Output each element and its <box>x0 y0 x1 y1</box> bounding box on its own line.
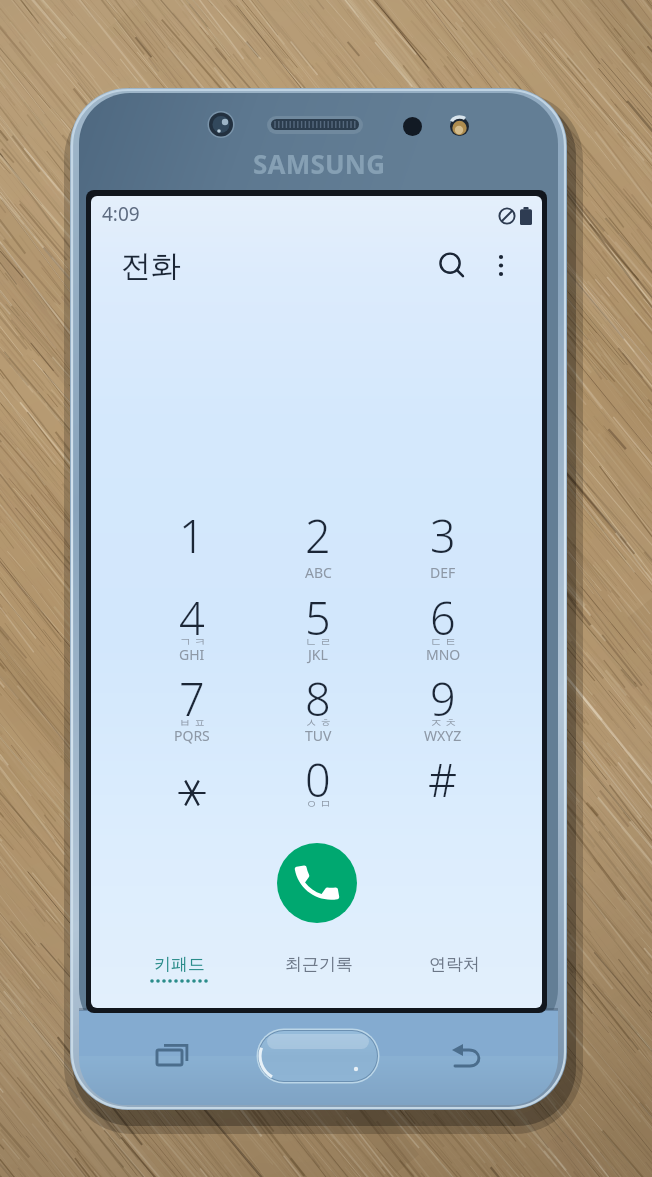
button[interactable]: Call <box>277 843 357 923</box>
staticText: GHI <box>179 645 205 664</box>
staticText: 연락처 <box>429 954 480 975</box>
staticText: PQRS <box>174 726 210 745</box>
button[interactable]: 4 <box>130 580 254 660</box>
staticText: ㄷㅌ <box>429 634 458 649</box>
staticText: JKL <box>308 645 328 664</box>
button[interactable]: 1 <box>130 498 254 578</box>
button[interactable]: 6 <box>381 580 505 660</box>
button[interactable]: 전화 <box>121 244 181 288</box>
staticText: TUV <box>305 726 332 745</box>
button[interactable]: 7 <box>130 661 254 741</box>
staticText: 4 <box>179 587 205 648</box>
staticText: 5 <box>305 587 331 648</box>
button[interactable]: 5 <box>256 580 380 660</box>
staticText: ㄴㄹ <box>304 634 333 649</box>
staticText: # <box>428 749 458 810</box>
staticText: 0 <box>305 749 331 810</box>
staticText: 3 <box>430 505 456 566</box>
staticText: SAMSUNG <box>253 146 386 181</box>
button[interactable]: 최근기록 <box>259 954 379 1008</box>
staticText: ABC <box>305 563 332 582</box>
staticText: 9 <box>430 668 456 729</box>
staticText: 최근기록 <box>285 954 353 975</box>
staticText: 6 <box>430 587 456 648</box>
staticText: ㅂㅍ <box>178 715 207 730</box>
button[interactable]: 8 <box>256 661 380 741</box>
button[interactable]: 3 <box>381 498 505 578</box>
staticText: MNO <box>426 645 461 664</box>
staticText: DEF <box>430 563 456 582</box>
staticText: ㄱㅋ <box>178 634 207 649</box>
staticText: 2 <box>305 505 331 566</box>
button[interactable] <box>130 742 254 822</box>
staticText: ㅇㅁ <box>304 796 333 811</box>
button[interactable]: 키패드 <box>119 954 239 1008</box>
staticText: ㅅㅎ <box>304 715 333 730</box>
staticText: 1 <box>179 505 205 566</box>
staticText: 키패드 <box>154 954 205 975</box>
button[interactable]: 9 <box>381 661 505 741</box>
staticText: 8 <box>305 668 331 729</box>
staticText: WXYZ <box>424 726 462 745</box>
button[interactable]: 연락처 <box>394 954 514 1008</box>
button[interactable]: Search <box>428 242 476 290</box>
button[interactable]: # <box>381 742 505 822</box>
staticText: 전화 <box>121 247 181 285</box>
staticText: 4:09 <box>102 201 140 227</box>
staticText: ㅈㅊ <box>429 715 458 730</box>
button[interactable]: More options <box>481 244 521 288</box>
staticText: 7 <box>179 668 205 729</box>
button[interactable]: 2 <box>256 498 380 578</box>
button[interactable]: 0 <box>256 742 380 822</box>
